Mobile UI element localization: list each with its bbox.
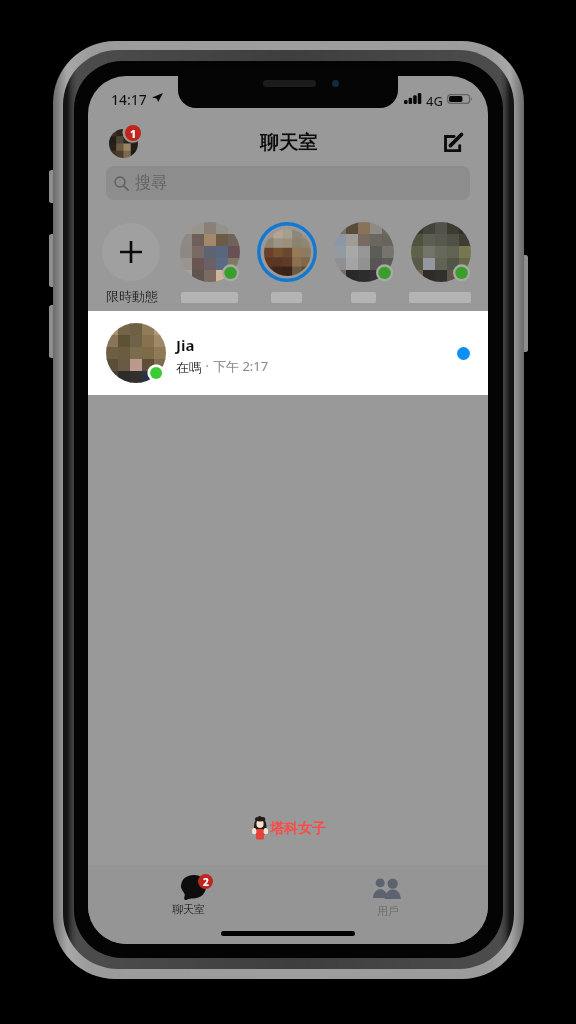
button[interactable]: Story	[334, 222, 394, 282]
staticText: 下午 2:17	[213, 357, 269, 375]
staticText: 在嗎	[176, 359, 202, 375]
button[interactable]: 用戶	[288, 865, 488, 920]
staticText: 4G	[426, 92, 443, 110]
button[interactable]: Jia	[88, 311, 488, 395]
staticText: ·	[202, 357, 213, 375]
button[interactable]: Story	[411, 222, 471, 282]
button[interactable]: Story	[257, 222, 317, 282]
staticText: 2	[203, 875, 209, 889]
staticText: 1	[130, 126, 137, 141]
staticText: 用戶	[377, 904, 399, 918]
staticText: 搜尋	[135, 173, 167, 193]
staticText: 聊天室	[260, 131, 317, 155]
staticText: 塔科女子	[270, 820, 326, 838]
staticText: 限時動態	[106, 288, 158, 304]
button[interactable]: Add story	[102, 223, 160, 281]
button[interactable]: Compose new message	[437, 128, 467, 158]
staticText: 聊天室	[172, 902, 205, 916]
button[interactable]: 2	[88, 865, 288, 920]
button[interactable]: 搜尋	[106, 166, 470, 200]
staticText: 14:17	[111, 90, 147, 109]
staticText: Jia	[176, 335, 195, 355]
button[interactable]: Profile	[109, 124, 141, 156]
button[interactable]: Story	[180, 222, 240, 282]
